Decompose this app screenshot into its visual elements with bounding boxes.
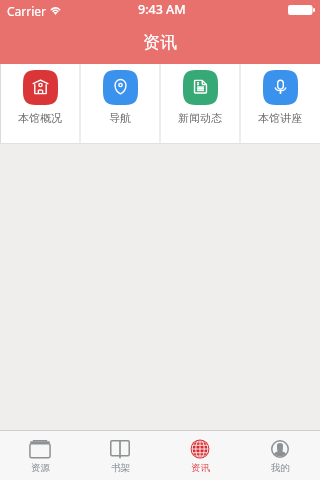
staticText: 资源 — [31, 462, 50, 474]
staticText: 本馆概况 — [18, 111, 62, 125]
button[interactable]: 资讯 — [160, 431, 240, 480]
button[interactable]: 资源 — [0, 431, 80, 480]
other: Battery full — [288, 5, 315, 15]
staticText: 9:43 AM — [138, 1, 186, 18]
staticText: Carrier — [7, 3, 47, 19]
staticText: 资讯 — [143, 32, 177, 53]
staticText: 书架 — [111, 462, 130, 474]
button[interactable]: 我的 — [240, 431, 320, 480]
other: Wi-Fi signal — [49, 5, 62, 15]
staticText: 资讯 — [191, 462, 210, 474]
staticText: 新闻动态 — [178, 111, 222, 125]
button[interactable]: 导航 — [80, 64, 160, 144]
button[interactable]: 书架 — [80, 431, 160, 480]
button[interactable]: 本馆概况 — [0, 64, 80, 144]
staticText: 本馆讲座 — [258, 111, 302, 125]
button[interactable]: 新闻动态 — [160, 64, 240, 144]
button[interactable]: 本馆讲座 — [240, 64, 320, 144]
staticText: 导航 — [109, 111, 131, 125]
staticText: 我的 — [271, 462, 290, 474]
